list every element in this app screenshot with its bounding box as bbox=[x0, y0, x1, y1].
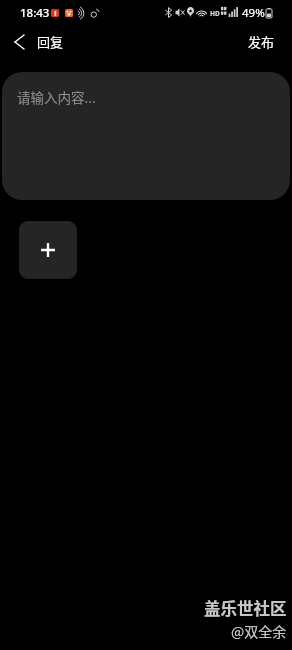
staticText: 盖乐世社区 bbox=[204, 596, 287, 620]
button[interactable]: 回复 bbox=[37, 33, 64, 52]
button[interactable]: Back bbox=[0, 31, 32, 53]
staticText: 49% bbox=[242, 5, 265, 21]
button[interactable]: Add image bbox=[19, 221, 77, 279]
staticText: 发布 bbox=[248, 32, 275, 51]
staticText: 回复 bbox=[37, 32, 64, 51]
staticText: @双全余 bbox=[231, 621, 287, 641]
staticText: 请输入内容... bbox=[17, 87, 96, 107]
button[interactable]: 发布 bbox=[230, 29, 292, 56]
staticText: HD bbox=[210, 9, 220, 18]
staticText: 18:43 bbox=[20, 5, 50, 21]
button[interactable]: 请输入内容... bbox=[2, 72, 290, 200]
